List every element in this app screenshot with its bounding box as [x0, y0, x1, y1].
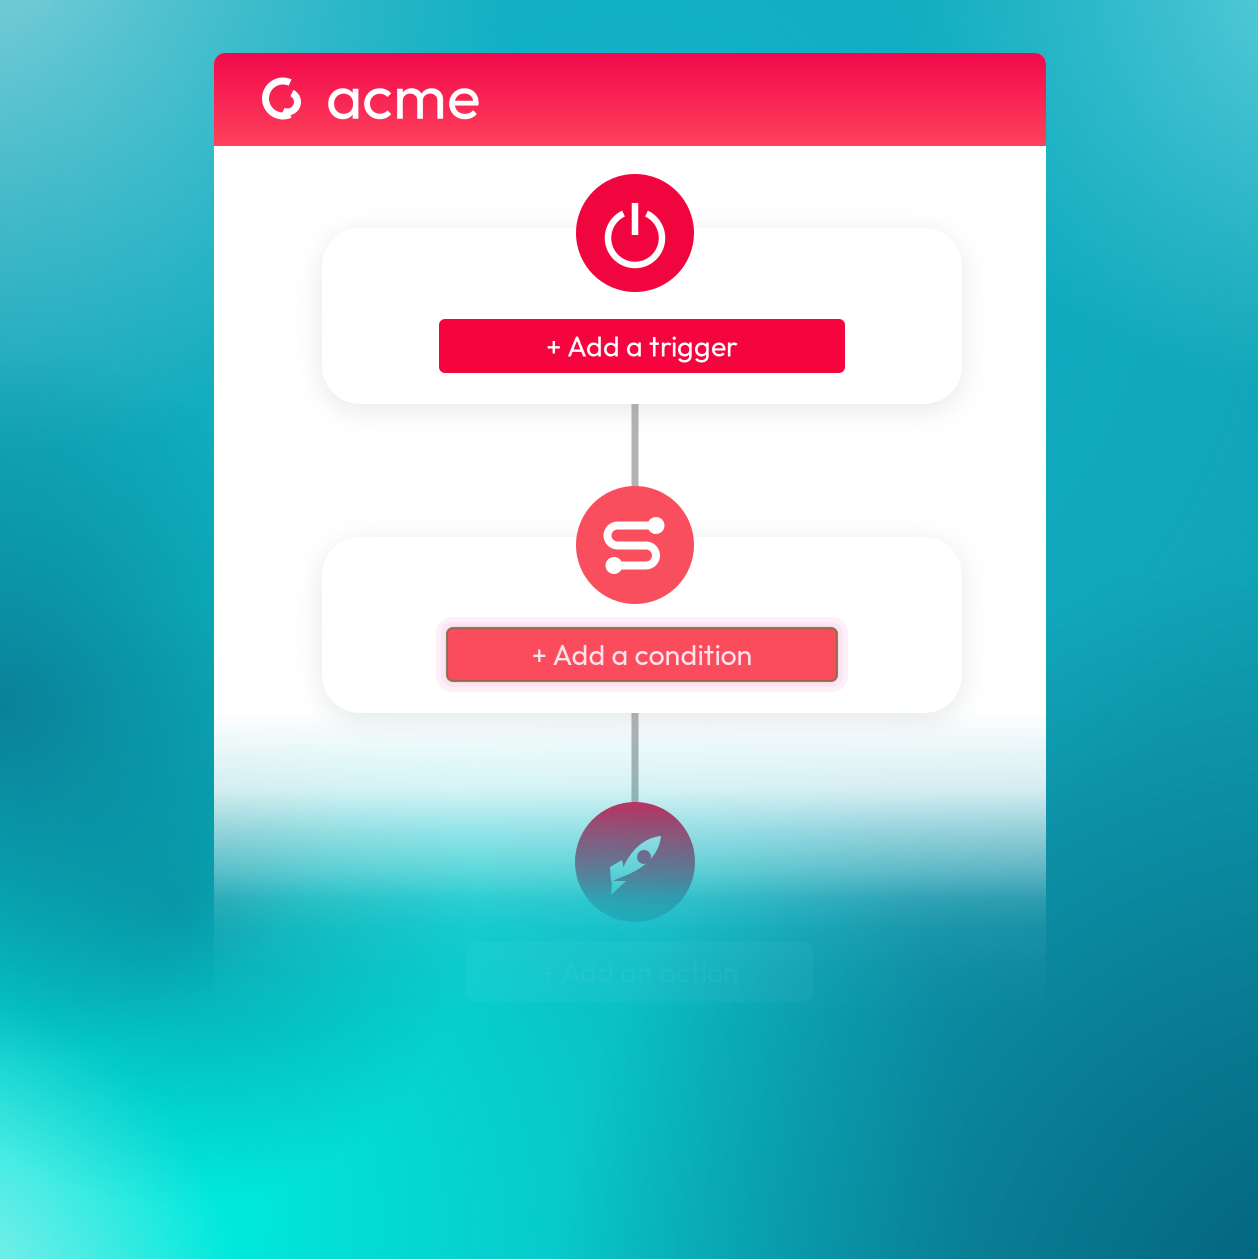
button[interactable]: + Add a condition [435, 616, 849, 693]
staticText: + Add an action [540, 954, 739, 990]
staticText: + Add a condition [531, 636, 752, 672]
staticText: + Add a trigger [546, 328, 738, 364]
button[interactable]: + Add a trigger [427, 307, 857, 385]
staticText: acme [326, 56, 481, 135]
